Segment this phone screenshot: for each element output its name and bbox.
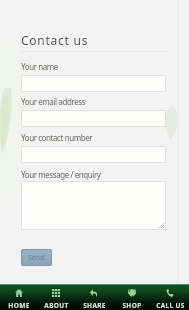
staticText: ABOUT [44,301,69,310]
other: About [52,289,60,297]
staticText: Contact us [21,32,89,48]
staticText: CALL US [156,301,185,310]
button[interactable]: About [37,284,75,310]
button[interactable]: Call us [151,284,189,310]
staticText: HOME [8,301,30,310]
button[interactable]: Shop [113,284,151,310]
staticText: SHOP [122,301,142,310]
other: Home [15,289,23,297]
other: Shop [128,289,136,297]
staticText: SHARE [83,301,106,310]
button[interactable] [21,181,166,230]
button[interactable]: Home [0,284,37,310]
staticText: Send [28,253,45,263]
staticText: Your message / enquiry [21,169,101,180]
button[interactable] [21,110,166,127]
other: Call us [166,289,174,297]
button[interactable]: Send [21,249,52,266]
button[interactable] [21,75,166,92]
staticText: Your email address [21,96,86,107]
staticText: Your name [21,61,58,72]
button[interactable] [21,146,166,163]
staticText: Your contact number [21,132,93,143]
other: Share [90,289,98,297]
button[interactable]: Share [75,284,113,310]
